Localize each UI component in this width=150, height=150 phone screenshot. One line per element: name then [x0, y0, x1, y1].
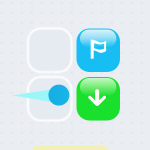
button[interactable]: Download [76, 77, 120, 120]
button[interactable]: Locate [28, 77, 71, 120]
button[interactable]: Flag [76, 28, 120, 72]
button[interactable]: Empty tile [28, 28, 71, 72]
